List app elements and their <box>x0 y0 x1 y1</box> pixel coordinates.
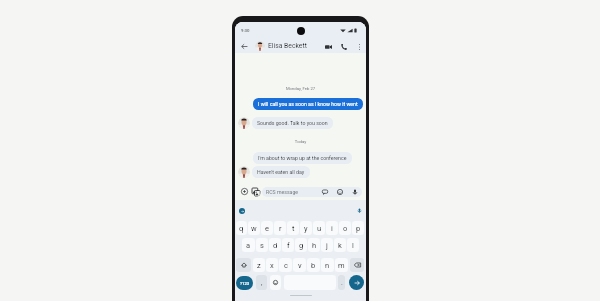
button[interactable]: . <box>338 275 345 290</box>
staticText: c <box>284 261 288 270</box>
button[interactable]: Call <box>337 40 350 53</box>
button[interactable]: s <box>256 238 268 252</box>
staticText: I will call you as soon as I know how it… <box>258 101 358 107</box>
button[interactable]: d <box>269 238 281 252</box>
button[interactable]: c <box>279 258 292 272</box>
button[interactable]: More options <box>353 40 366 53</box>
staticText: u <box>317 224 322 233</box>
button[interactable]: r <box>274 221 286 235</box>
button[interactable]: w <box>248 221 260 235</box>
button[interactable]: g <box>295 238 307 252</box>
button[interactable] <box>350 258 364 272</box>
button[interactable] <box>270 275 281 290</box>
button[interactable]: b <box>307 258 320 272</box>
staticText: b <box>311 261 316 270</box>
button[interactable]: m <box>335 258 348 272</box>
button[interactable]: Sounds good. Talk to you soon <box>252 117 333 129</box>
staticText: , <box>261 279 263 287</box>
staticText: RCS message <box>266 189 299 195</box>
button[interactable]: e <box>261 221 273 235</box>
staticText: ?123 <box>240 281 250 286</box>
button[interactable]: t <box>287 221 299 235</box>
staticText: Haven't eaten all day <box>257 169 305 175</box>
button[interactable]: l <box>347 238 359 252</box>
staticText: k <box>338 241 342 250</box>
button[interactable]: f <box>282 238 294 252</box>
staticText: Sounds good. Talk to you soon <box>257 120 328 126</box>
staticText: q <box>239 224 244 233</box>
staticText: w <box>251 224 257 233</box>
staticText: f <box>287 241 290 250</box>
button[interactable]: RCS message <box>262 187 362 197</box>
staticText: n <box>325 261 330 270</box>
staticText: Monday, Feb 27 <box>235 86 366 91</box>
staticText: d <box>273 241 278 250</box>
button[interactable]: v <box>293 258 306 272</box>
button[interactable]: o <box>339 221 351 235</box>
button[interactable]: j <box>321 238 333 252</box>
staticText: r <box>279 224 282 233</box>
button[interactable]: Back <box>240 42 249 51</box>
button[interactable]: Google assistant <box>239 208 245 214</box>
staticText: . <box>341 279 343 287</box>
button[interactable]: q <box>236 221 247 235</box>
staticText: t <box>292 224 295 233</box>
button[interactable]: I'm about to wrap up at the conference <box>253 152 352 164</box>
button[interactable]: a <box>242 238 255 252</box>
button[interactable]: , <box>256 275 267 290</box>
staticText: j <box>326 241 328 250</box>
button[interactable]: p <box>352 221 364 235</box>
staticText: Today <box>235 139 366 144</box>
button[interactable]: Haven't eaten all day <box>252 166 310 178</box>
staticText: i <box>331 224 333 233</box>
staticText: l <box>352 241 354 250</box>
button[interactable]: k <box>334 238 346 252</box>
staticText: e <box>265 224 269 233</box>
staticText: y <box>304 224 308 233</box>
button[interactable]: x <box>266 258 278 272</box>
staticText: s <box>260 241 264 250</box>
staticText: v <box>298 261 302 270</box>
staticText: a <box>246 241 251 250</box>
button[interactable]: u <box>313 221 325 235</box>
button[interactable]: h <box>308 238 320 252</box>
staticText: o <box>343 224 348 233</box>
button[interactable]: i <box>326 221 338 235</box>
staticText: z <box>257 261 261 270</box>
button[interactable]: z <box>253 258 265 272</box>
button[interactable]: I will call you as soon as I know how it… <box>253 98 363 110</box>
button[interactable]: Gallery <box>250 186 261 197</box>
staticText: m <box>338 261 345 270</box>
staticText: h <box>312 241 317 250</box>
staticText: p <box>356 224 361 233</box>
button[interactable] <box>236 258 251 272</box>
button[interactable]: n <box>321 258 334 272</box>
button[interactable]: Add attachment <box>239 186 250 197</box>
staticText: Elisa Beckett <box>268 42 307 50</box>
button[interactable]: ?123 <box>236 276 253 290</box>
staticText: 9:30 <box>241 28 250 33</box>
button[interactable]: y <box>300 221 312 235</box>
staticText: g <box>299 241 304 250</box>
staticText: x <box>270 261 274 270</box>
button[interactable]: Video call <box>322 40 335 53</box>
button[interactable]: Send <box>349 275 364 290</box>
staticText: I'm about to wrap up at the conference <box>258 155 347 161</box>
